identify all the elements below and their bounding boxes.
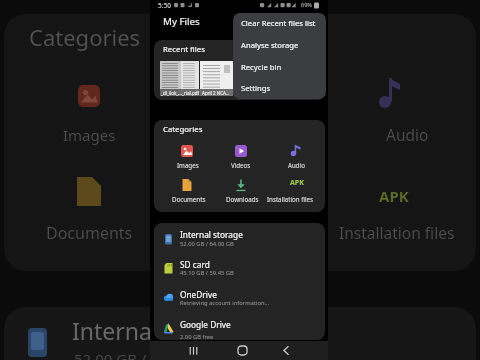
button[interactable] [160,176,214,212]
staticText: Categories [29,22,141,52]
staticText: Internal s [72,315,175,346]
staticText: Images [63,125,116,145]
button[interactable] [154,223,325,253]
button[interactable] [214,176,268,212]
staticText: Installation files [267,195,314,203]
staticText: Recent files [163,44,205,55]
staticText: Recycle bin [241,62,282,72]
staticText: Documents [46,222,133,244]
button[interactable] [154,283,325,313]
button[interactable] [160,61,199,96]
button[interactable]: Downloads [226,195,259,203]
staticText: Clear Recent files list [241,18,316,28]
staticText: Google Drive [180,319,231,330]
button[interactable] [160,140,214,176]
button[interactable]: Clear Recent files list [233,13,326,35]
staticText: 52.00 GB / 64.00 GB [180,240,234,248]
staticText: Categories [163,124,203,135]
button[interactable] [270,341,302,360]
staticText: Images [177,161,199,169]
button[interactable]: Videos [231,161,251,169]
staticText: 5:50 [158,1,171,10]
staticText: Retrieving account information... [180,299,270,307]
button[interactable]: Images [177,161,199,169]
button[interactable] [214,140,268,176]
staticText: Downloads [226,195,259,203]
button[interactable]: My Files [150,0,187,13]
button[interactable] [269,176,323,212]
staticText: 69% [301,1,312,8]
staticText: 45.10 GB / 59.45 GB [180,269,234,277]
staticText: April 2 NCA... [202,90,230,96]
staticText: Installation files [339,222,455,243]
staticText: APK [290,178,304,188]
button[interactable]: Recent files [154,40,325,100]
staticText: 52.00 GB / [74,349,147,360]
button[interactable]: Recycle bin [233,57,326,79]
staticText: Internal storage [180,229,243,240]
button[interactable] [224,341,256,360]
button[interactable] [178,341,210,360]
staticText: Videos [231,161,251,169]
staticText: Analyse storage [241,40,299,50]
staticText: SD card [180,259,210,270]
button[interactable] [269,140,323,176]
staticText: Documents [172,195,206,203]
staticText: Audio [288,161,305,169]
staticText: APK [379,186,409,206]
staticText: OneDrive [180,289,217,300]
button[interactable]: Installation files [267,195,314,203]
button[interactable] [154,313,325,340]
staticText: _dl_ilok_..._rial.pdf [161,90,199,96]
staticText: 2.00 GB free [180,333,214,340]
button[interactable]: Audio [288,161,305,169]
button[interactable]: Settings [233,78,326,99]
staticText: Audio [386,124,429,145]
button[interactable]: Documents [172,195,206,203]
button[interactable] [154,253,325,283]
button[interactable] [200,61,233,96]
staticText: Settings [241,83,271,93]
button[interactable]: Analyse storage [233,35,326,57]
